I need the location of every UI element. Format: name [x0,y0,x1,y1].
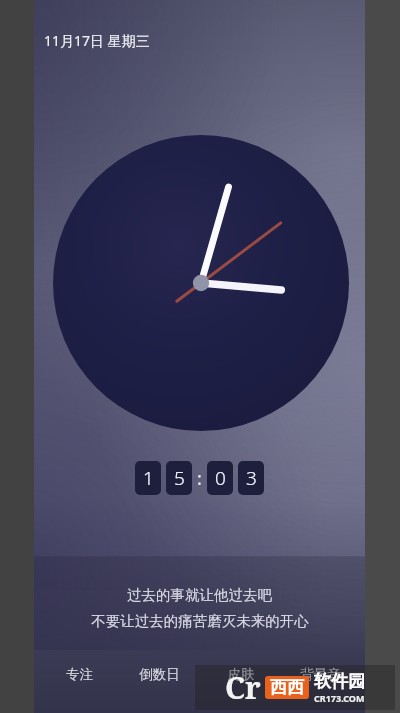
staticText: 不要让过去的痛苦磨灭未来的开心 [91,612,309,630]
staticText: 11月17日 星期三 [44,31,150,50]
button[interactable]: 皮肤 [205,651,275,697]
staticText: 3 [246,465,257,491]
staticText: 背景音 [300,666,341,683]
staticText: 皮肤 [227,666,254,683]
staticText: 5 [174,465,185,491]
staticText: Cr [225,667,261,708]
staticText: 0 [215,465,226,491]
staticText: 1 [143,465,154,491]
staticText: 软件园 [314,671,365,692]
staticText: CR173.COM [314,692,365,704]
button[interactable]: 背景音 [285,651,355,697]
staticText: 西西 [270,677,304,698]
other: Watermark [195,665,395,710]
button[interactable]: 专注 [44,651,114,697]
staticText: 过去的事就让他过去吧 [127,586,272,604]
button[interactable]: 倒数日 [124,651,194,697]
staticText: 倒数日 [139,666,180,683]
staticText: : [197,466,207,491]
staticText: 专注 [66,666,93,683]
